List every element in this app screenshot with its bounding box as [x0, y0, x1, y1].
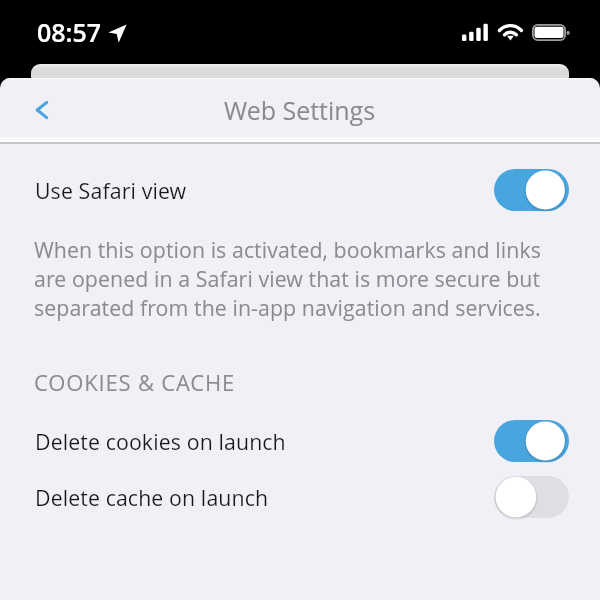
- staticText: COOKIES & CACHE: [34, 367, 236, 397]
- staticText: Delete cookies on launch: [35, 427, 286, 456]
- staticText: 08:57: [37, 15, 101, 49]
- button[interactable]: Delete cache on launch: [0, 471, 600, 523]
- button[interactable]: Use Safari view: [0, 164, 600, 216]
- button[interactable]: Back: [22, 90, 62, 130]
- staticText: Web Settings: [224, 93, 376, 127]
- staticText: Use Safari view: [35, 176, 187, 205]
- staticText: When this option is activated, bookmarks…: [34, 235, 550, 322]
- staticText: Delete cache on launch: [35, 483, 269, 512]
- button[interactable]: Delete cookies on launch: [0, 415, 600, 467]
